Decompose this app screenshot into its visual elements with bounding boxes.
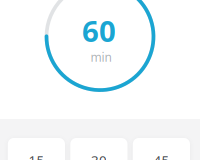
button[interactable]: 30 [70,138,127,160]
staticText: min [90,49,111,65]
button[interactable]: 15 [8,138,65,160]
staticText: 30 [91,151,107,160]
button[interactable]: 45 [133,138,190,160]
staticText: 15 [28,151,44,160]
staticText: 60 [82,11,116,50]
staticText: 45 [153,151,169,160]
